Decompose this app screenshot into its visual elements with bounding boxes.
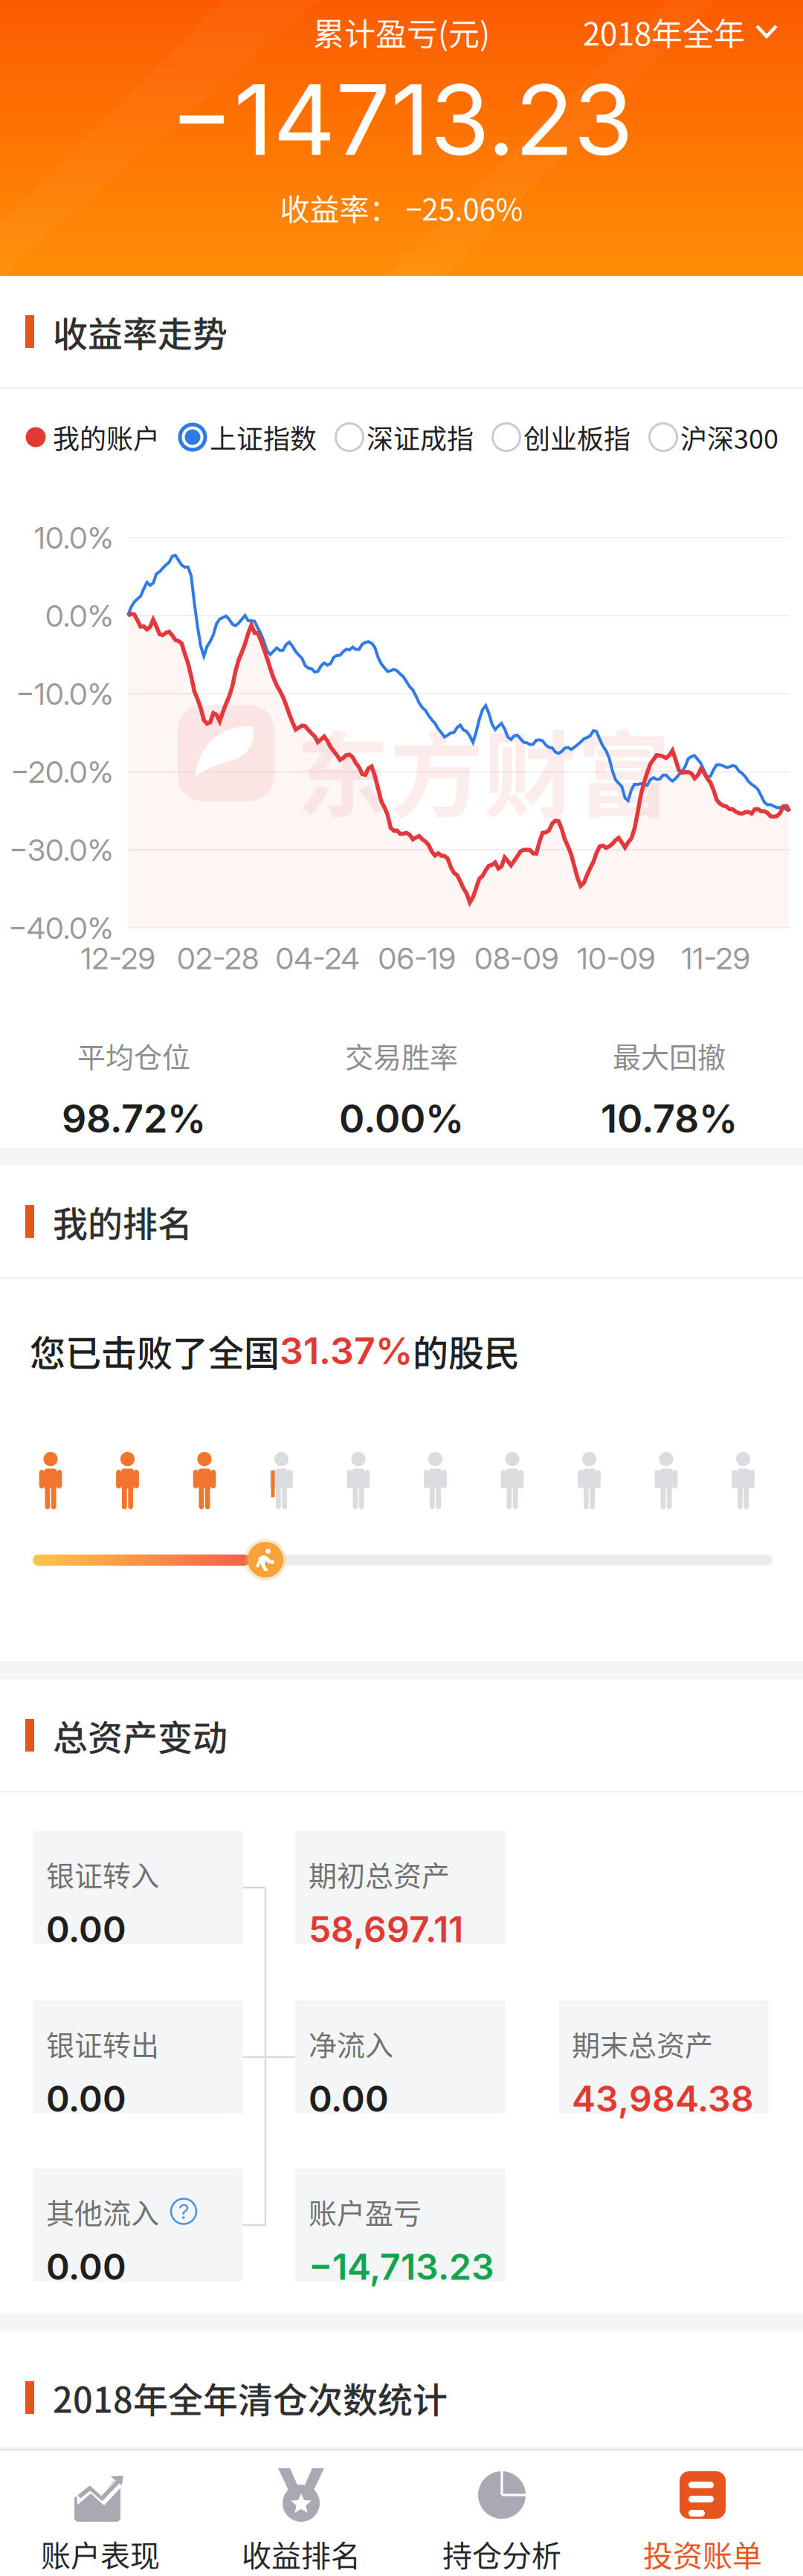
staticText: 投资账单 — [643, 2532, 762, 2575]
staticText: 0.00% — [339, 1095, 464, 1142]
staticText: 我的账户 — [53, 418, 160, 456]
staticText: 收益率： −25.06% — [280, 186, 523, 229]
staticText: 08-09 — [474, 940, 559, 976]
button[interactable]: 投资账单 — [602, 2451, 803, 2576]
staticText: 上证指数 — [210, 418, 317, 456]
button[interactable]: 收益排名 — [201, 2451, 401, 2576]
button[interactable]: 账户表现 — [0, 2451, 201, 2576]
staticText: 的股民 — [413, 1325, 520, 1376]
staticText: 创业板指 — [523, 418, 631, 456]
staticText: 累计盈亏(元) — [313, 9, 490, 55]
staticText: 58,697.11 — [309, 1908, 463, 1951]
staticText: 期末总资产 — [572, 2023, 713, 2064]
staticText: −10.0% — [16, 676, 113, 712]
staticText: 账户表现 — [41, 2532, 160, 2575]
staticText: 净流入 — [309, 2023, 393, 2064]
staticText: 0.00 — [46, 2077, 126, 2120]
staticText: −20.0% — [10, 754, 113, 790]
staticText: 交易胜率 — [345, 1035, 458, 1076]
button[interactable]: 说明 — [170, 2197, 198, 2225]
staticText: 持仓分析 — [442, 2532, 561, 2575]
staticText: 最大回撤 — [613, 1035, 726, 1076]
staticText: 43,984.38 — [572, 2077, 754, 2120]
staticText: 10-09 — [577, 940, 656, 976]
staticText: 银证转入 — [46, 1853, 159, 1894]
staticText: 我的排名 — [53, 1196, 193, 1247]
staticText: 0.00 — [46, 2245, 126, 2288]
staticText: 收益排名 — [242, 2532, 361, 2575]
staticText: 您已击败了全国 — [30, 1325, 280, 1376]
staticText: 2018年全年清仓次数统计 — [53, 2372, 448, 2423]
staticText: 总资产变动 — [53, 1710, 228, 1760]
button[interactable]: 上证指数 — [176, 389, 333, 485]
staticText: −30.0% — [9, 832, 113, 868]
button[interactable]: 持仓分析 — [401, 2451, 602, 2576]
button[interactable]: 2018年全年 — [506, 0, 803, 64]
staticText: 04-24 — [275, 940, 359, 976]
staticText: 2018年全年 — [583, 9, 745, 55]
staticText: 收益率走势 — [53, 306, 228, 357]
staticText: 0.00 — [309, 2077, 389, 2120]
staticText: 银证转出 — [46, 2023, 159, 2064]
staticText: 10.78% — [601, 1095, 738, 1142]
staticText: 11-29 — [681, 940, 751, 976]
staticText: 账户盈亏 — [309, 2191, 422, 2232]
button[interactable]: 深证成指 — [333, 389, 490, 485]
staticText: −14713.23 — [170, 61, 633, 178]
staticText: 其他流入 — [46, 2191, 159, 2232]
staticText: 期初总资产 — [309, 1853, 450, 1894]
staticText: 10.0% — [34, 520, 113, 556]
staticText: 东方财富 — [296, 701, 671, 837]
staticText: 沪深300 — [680, 418, 778, 456]
staticText: 12-29 — [81, 940, 156, 976]
staticText: 02-28 — [177, 940, 259, 976]
staticText: 平均仓位 — [77, 1035, 190, 1076]
staticText: −40.0% — [8, 910, 113, 946]
staticText: 98.72% — [62, 1095, 206, 1142]
staticText: ? — [178, 2199, 189, 2224]
staticText: 06-19 — [378, 940, 456, 976]
staticText: 31.37% — [280, 1328, 413, 1373]
button[interactable]: 沪深300 — [647, 389, 795, 485]
button[interactable]: 我的账户 — [19, 389, 176, 485]
staticText: −14,713.23 — [309, 2245, 494, 2288]
staticText: 0.00 — [46, 1908, 126, 1951]
button[interactable]: 创业板指 — [490, 389, 647, 485]
staticText: 0.0% — [45, 598, 113, 634]
staticText: 深证成指 — [367, 418, 474, 456]
